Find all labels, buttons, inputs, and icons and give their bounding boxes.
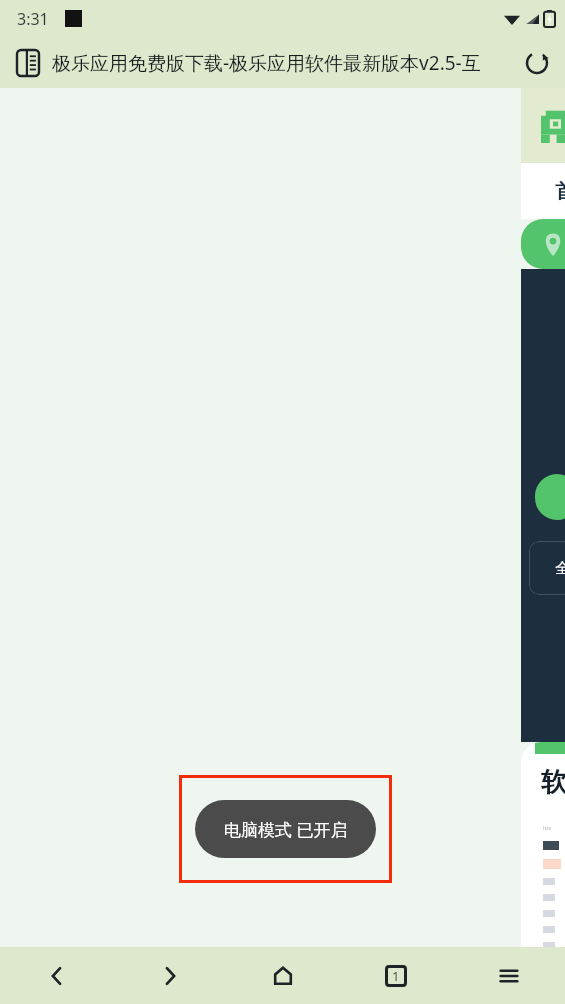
button[interactable]: Download [535,474,565,520]
staticText: 首 [555,179,565,204]
staticText: 3:31 [17,8,49,30]
button[interactable]: Back [0,947,113,1004]
button[interactable]: Reader mode [8,43,48,83]
staticText: ios [543,824,552,832]
button[interactable]: Home [226,947,339,1004]
staticText: 软 [541,766,565,799]
button[interactable]: Tabs [339,947,452,1004]
button[interactable]: 全 [529,541,565,595]
staticText: 电脑模式 已开启 [224,818,348,841]
button[interactable]: Refresh [517,43,557,83]
button[interactable]: Menu [452,947,565,1004]
button[interactable]: 电脑模式 已开启 [195,800,376,858]
staticText: 全 [555,559,565,578]
staticText: 1 [392,967,400,985]
staticText: 极乐应用免费版下载-极乐应用软件最新版本v2.5-互 [52,50,517,76]
button[interactable]: Forward [113,947,226,1004]
